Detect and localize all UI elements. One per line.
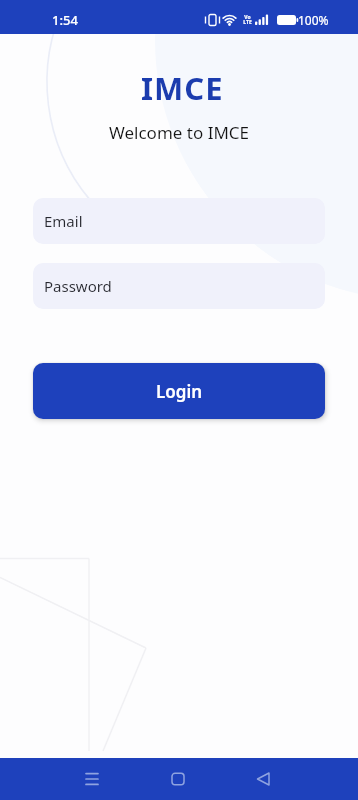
button[interactable]: Login <box>33 363 325 419</box>
staticText: 100% <box>298 12 329 28</box>
button[interactable] <box>158 758 198 800</box>
staticText: Welcome to IMCE <box>109 121 250 144</box>
staticText: 1:54 <box>52 11 78 29</box>
button[interactable] <box>243 758 283 800</box>
staticText: Email <box>44 211 83 231</box>
button[interactable] <box>72 758 112 800</box>
staticText: Login <box>156 380 203 403</box>
staticText: IMCE <box>141 67 224 109</box>
staticText: Password <box>44 276 112 296</box>
button[interactable]: Email <box>33 198 325 244</box>
button[interactable]: Password <box>33 263 325 309</box>
staticText: Vo LTE <box>243 14 252 25</box>
